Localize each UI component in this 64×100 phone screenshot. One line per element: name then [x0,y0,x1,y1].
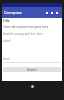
staticText: Compose [4,10,22,15]
staticText: Label [3,39,11,43]
staticText: Item [3,57,10,61]
staticText: Title [3,19,10,23]
staticText: Button [27,68,37,72]
button[interactable]: Button [3,67,61,72]
button[interactable]: Action [45,11,49,15]
button[interactable]: Action [55,11,59,15]
staticText: Another paragraph line here [3,32,44,36]
staticText: Some description text goes here [3,25,49,29]
button[interactable]: Action [50,11,54,15]
button[interactable]: Home [31,85,34,88]
